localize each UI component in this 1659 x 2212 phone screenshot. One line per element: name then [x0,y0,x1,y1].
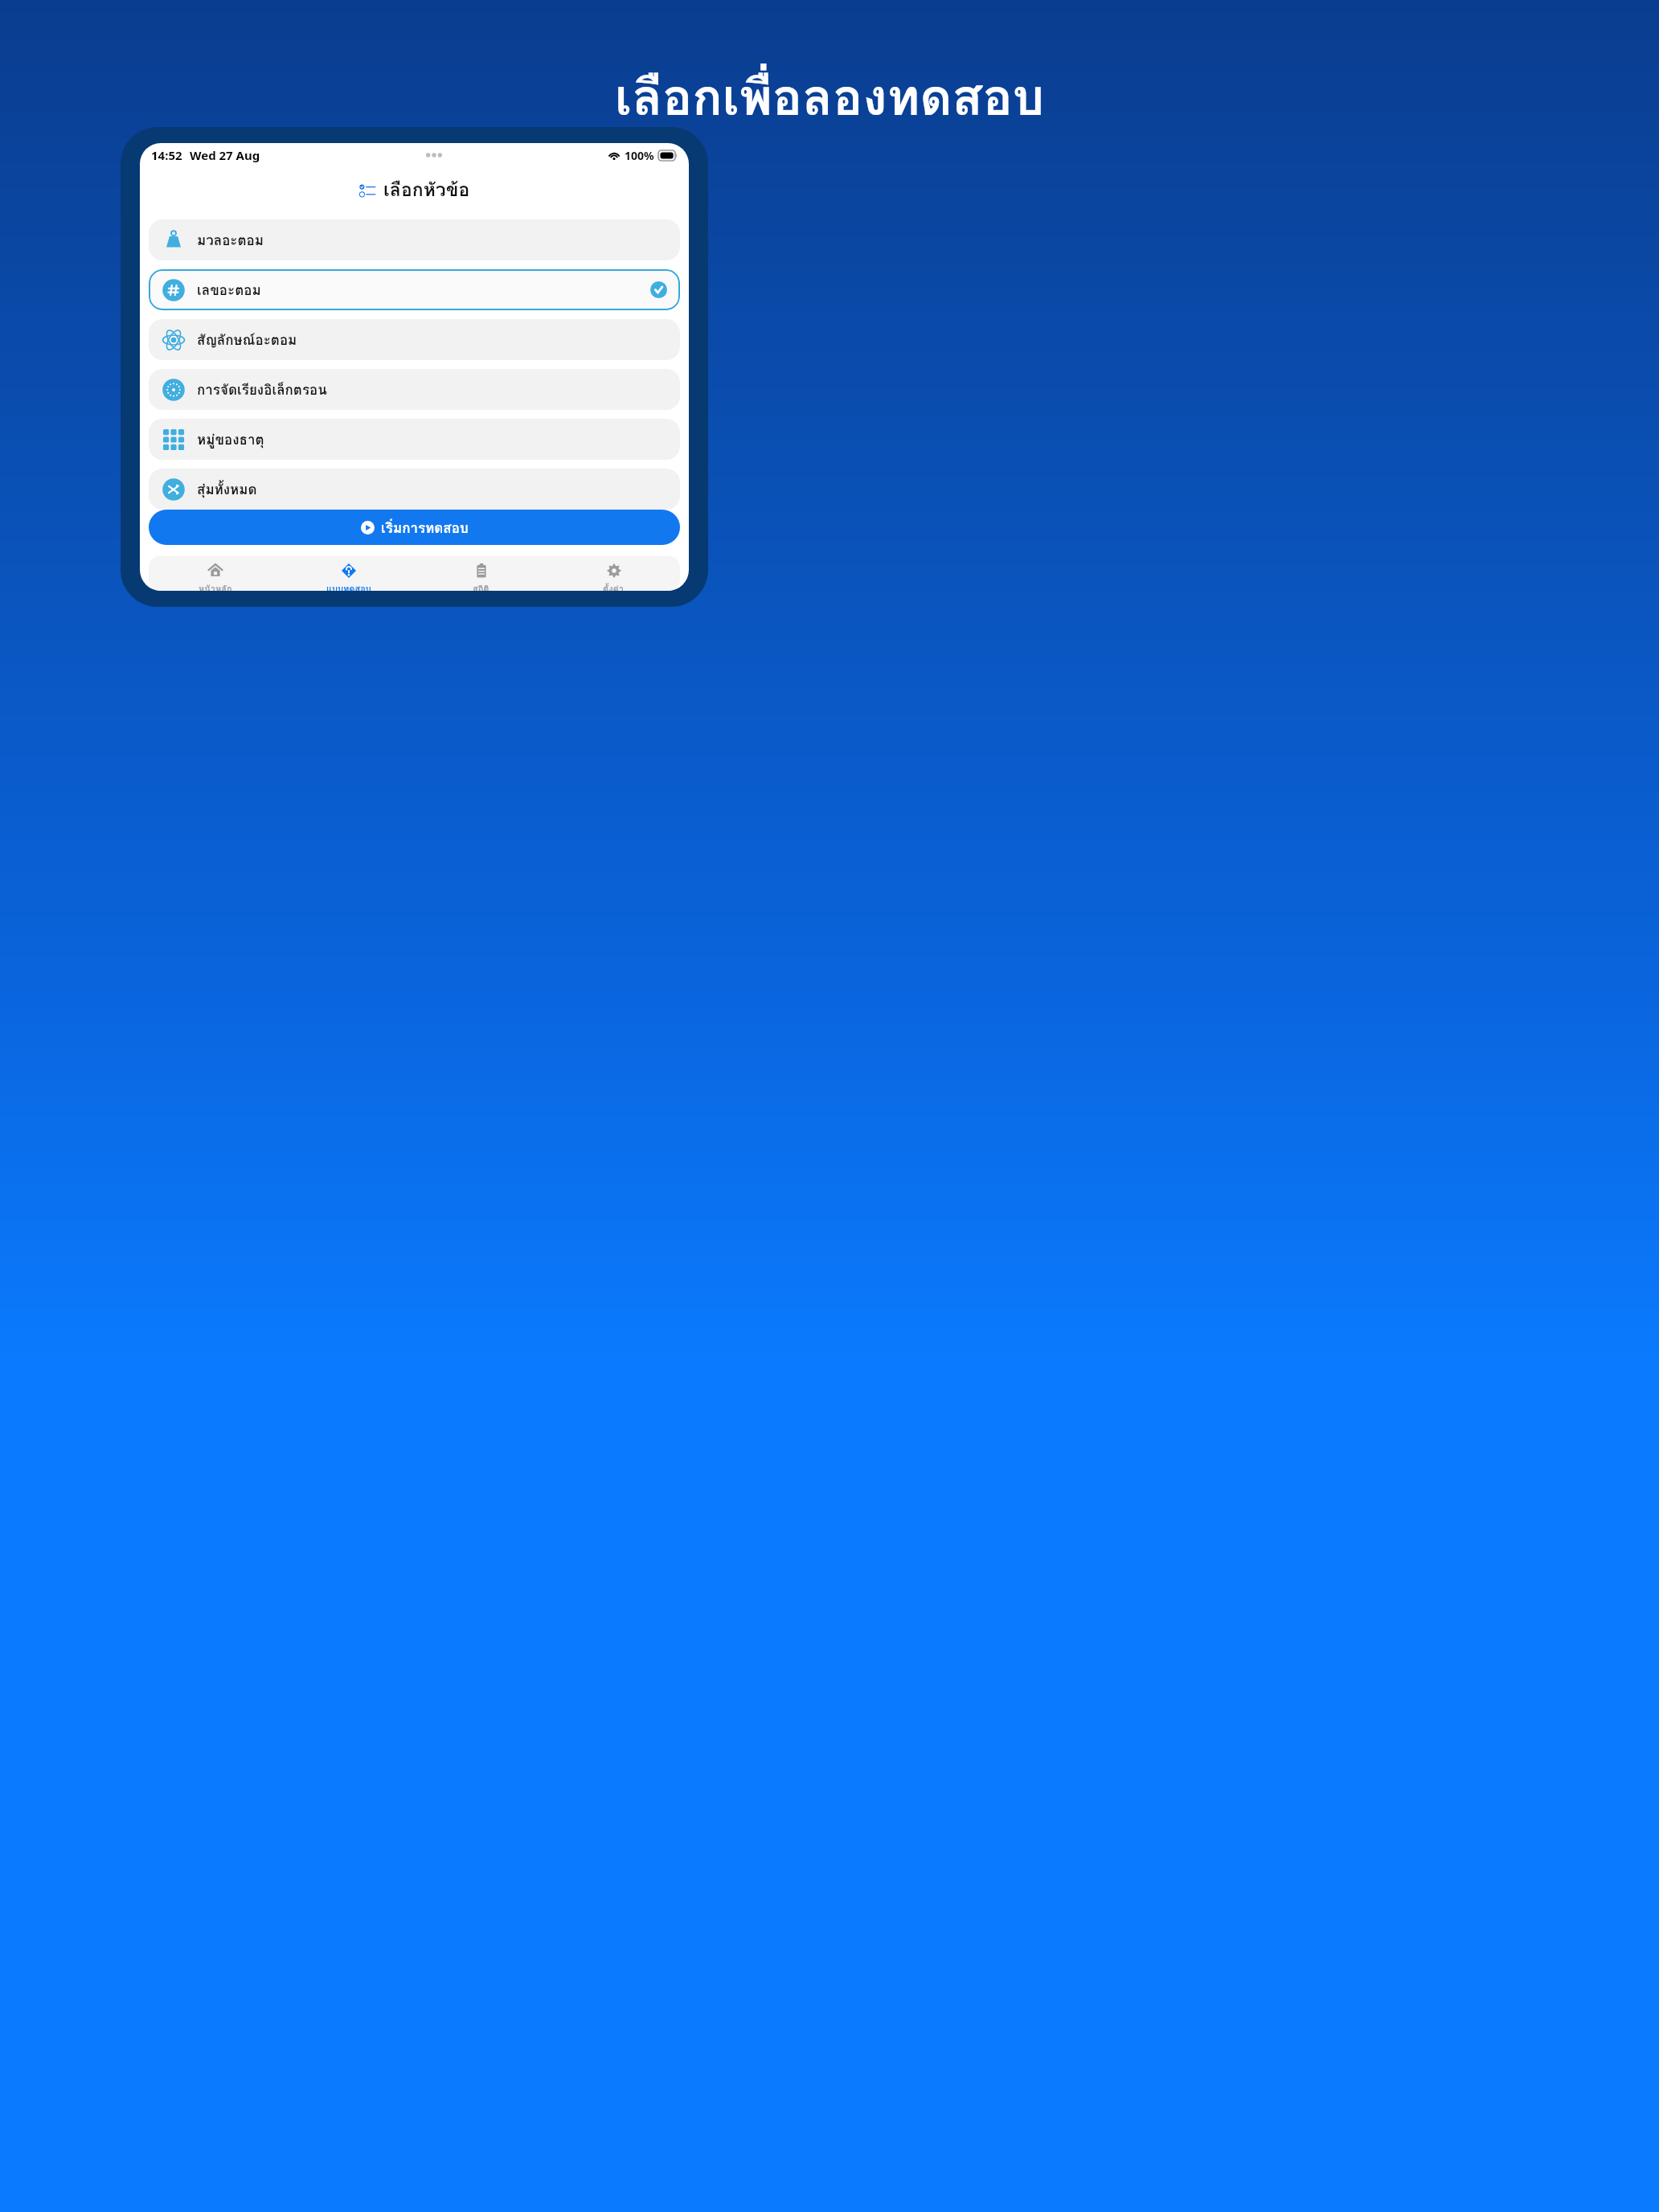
staticText: หน้าหลัก [199,582,232,591]
staticText: เลือกเพื่อลองทดสอบ [615,58,1045,137]
staticText: ตั้งค่า [603,582,625,591]
staticText: 14:52 [151,147,182,163]
staticText: Wed 27 Aug [190,147,260,163]
button[interactable]: ตั้งค่า [547,556,680,591]
staticText: เริ่มการทดสอบ [381,517,469,539]
button[interactable]: แบบทดสอบ [282,556,415,591]
button[interactable]: เลขอะตอม [149,269,680,310]
button[interactable]: สถิติ [415,556,547,591]
staticText: หมู่ของธาตุ [197,428,264,450]
staticText: สัญลักษณ์อะตอม [197,329,297,350]
staticText: สถิติ [473,582,490,591]
button[interactable]: สัญลักษณ์อะตอม [149,319,680,360]
staticText: 100% [625,148,654,163]
button[interactable]: หน้าหลัก [149,556,282,591]
button[interactable]: การจัดเรียงอิเล็กตรอน [149,369,680,410]
staticText: สุ่มทั้งหมด [197,478,257,500]
staticText: เลขอะตอม [197,279,261,301]
button[interactable]: เริ่มการทดสอบ [149,510,680,545]
button[interactable]: สุ่มทั้งหมด [149,469,680,510]
staticText: เลือกหัวข้อ [383,175,470,205]
staticText: มวลอะตอม [197,229,264,251]
button[interactable]: หมู่ของธาตุ [149,419,680,460]
staticText: แบบทดสอบ [326,582,371,591]
button[interactable]: มวลอะตอม [149,219,680,260]
staticText: การจัดเรียงอิเล็กตรอน [197,379,327,400]
